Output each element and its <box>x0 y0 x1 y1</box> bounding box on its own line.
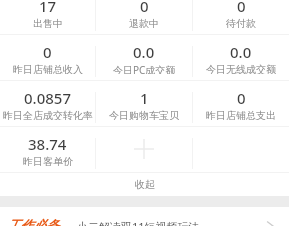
button[interactable]: 0.0857 <box>0 81 95 126</box>
button[interactable]: 0.0 <box>193 35 289 80</box>
button[interactable]: 0 <box>96 0 192 34</box>
staticText: 昨日店铺总收入 <box>13 63 83 74</box>
staticText: 昨日客单价 <box>23 155 73 166</box>
button[interactable]: 17 <box>0 0 95 34</box>
staticText: 待付款 <box>226 17 256 28</box>
staticText: 0 <box>43 42 52 58</box>
staticText: 今日无线成交额 <box>206 63 276 74</box>
button[interactable]: 0 <box>193 0 289 34</box>
button[interactable]: 工作必备 <box>0 207 289 226</box>
staticText: 0.0857 <box>24 88 71 104</box>
staticText: 退款中 <box>129 17 159 28</box>
staticText: 今日PC成交额 <box>113 63 176 74</box>
staticText: 0 <box>140 0 149 12</box>
staticText: 38.74 <box>28 134 67 150</box>
button[interactable]: 38.74 <box>0 127 95 172</box>
staticText: 1 <box>140 88 149 104</box>
staticText: 工作必备 <box>7 217 59 226</box>
staticText: 收起 <box>135 178 155 190</box>
staticText: 小二解读双11短视频玩法 <box>77 219 200 226</box>
other: More <box>264 219 278 226</box>
button[interactable]: 0 <box>0 35 95 80</box>
button[interactable]: 收起 <box>0 173 289 185</box>
staticText: 0 <box>237 0 246 12</box>
staticText: 0.0 <box>230 42 252 58</box>
staticText: 今日购物车宝贝 <box>109 109 179 120</box>
button[interactable]: 0 <box>193 81 289 126</box>
staticText: 0 <box>237 88 246 104</box>
staticText: 0.0 <box>133 42 155 58</box>
button[interactable]: 0.0 <box>96 35 192 80</box>
staticText: 昨日全店成交转化率 <box>3 109 93 120</box>
staticText: 17 <box>39 0 57 12</box>
staticText: 昨日店铺总支出 <box>206 109 276 120</box>
staticText: 出售中 <box>33 17 63 28</box>
button[interactable]: 1 <box>96 81 192 126</box>
